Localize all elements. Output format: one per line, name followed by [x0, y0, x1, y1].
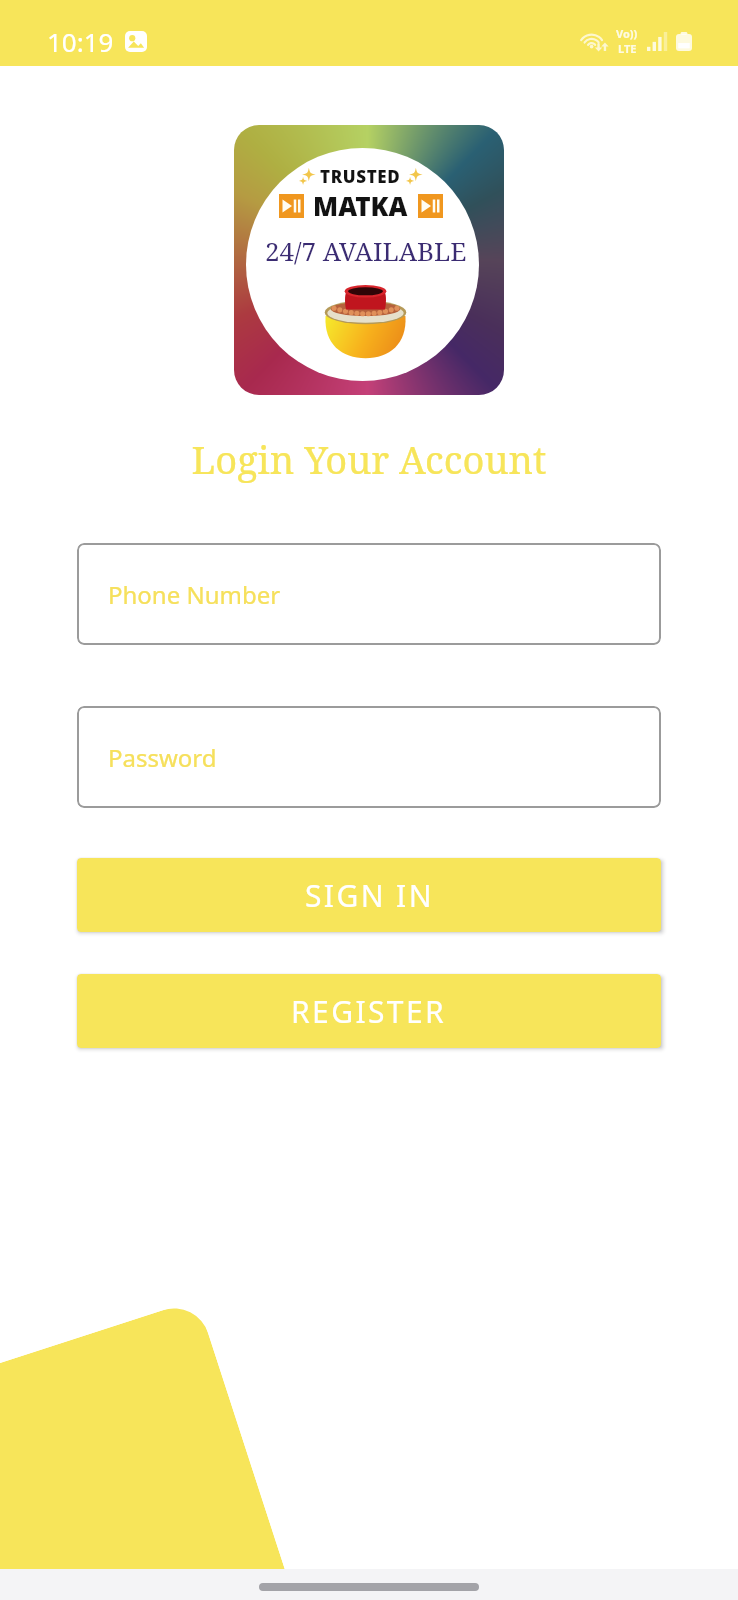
other: Trusted Matka 24/7 available logo: [234, 125, 504, 395]
staticText: TRUSTED: [320, 165, 401, 188]
staticText: SIGN IN: [305, 875, 434, 916]
button[interactable]: Password: [77, 706, 661, 808]
staticText: Phone Number: [108, 578, 281, 611]
staticText: Vo)): [616, 26, 638, 41]
staticText: 10:19: [47, 24, 114, 59]
button[interactable]: SIGN IN: [77, 858, 661, 932]
staticText: Password: [108, 741, 217, 774]
staticText: MATKA: [313, 188, 408, 223]
staticText: LTE: [618, 41, 637, 56]
staticText: REGISTER: [291, 991, 447, 1032]
staticText: Login Your Account: [0, 433, 738, 485]
other: Home: [259, 1583, 479, 1591]
button[interactable]: Phone Number: [77, 543, 661, 645]
button[interactable]: REGISTER: [77, 974, 661, 1048]
staticText: 24/7 AVAILABLE: [265, 233, 467, 268]
